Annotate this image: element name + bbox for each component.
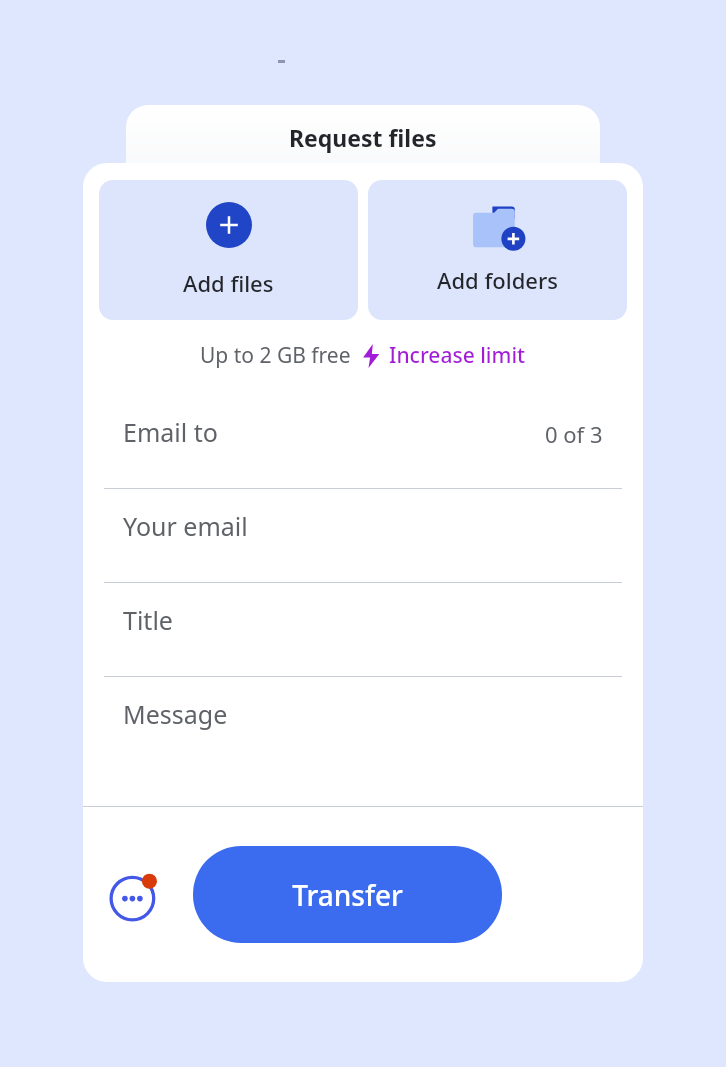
staticText: Title (123, 603, 173, 637)
staticText: Add folders (437, 265, 558, 295)
staticText: Message (123, 697, 228, 731)
button[interactable]: Message (83, 677, 643, 771)
staticText: Add files (183, 268, 274, 298)
button[interactable]: Email to (83, 395, 643, 488)
button[interactable]: Transfer (193, 846, 502, 943)
button[interactable]: More options (106, 865, 166, 925)
staticText: Transfer (292, 876, 403, 914)
button[interactable]: Increase limit (362, 341, 526, 370)
staticText: Increase limit (389, 341, 526, 370)
staticText: 0 of 3 (545, 419, 603, 449)
button[interactable]: Title (83, 583, 643, 676)
staticText: Up to 2 GB free (200, 341, 351, 370)
button[interactable]: Add folders (368, 180, 627, 320)
staticText: Email to (123, 415, 218, 449)
button[interactable]: Add files (99, 180, 358, 320)
button[interactable]: Your email (83, 489, 643, 582)
staticText: Your email (123, 509, 248, 543)
staticText: Request files (289, 122, 437, 153)
